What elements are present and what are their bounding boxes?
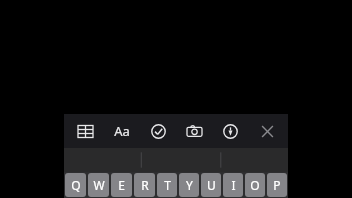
staticText: I	[231, 177, 236, 193]
button[interactable]: Checklist	[143, 114, 173, 148]
button[interactable]: I	[223, 173, 243, 197]
button[interactable]: W	[88, 173, 109, 197]
button[interactable]: Close	[252, 114, 282, 148]
button[interactable]: Q	[65, 173, 86, 197]
staticText: Aa	[114, 122, 130, 140]
button[interactable]: Camera	[179, 114, 209, 148]
button[interactable]: R	[134, 173, 155, 197]
staticText: Q	[71, 177, 81, 193]
staticText: R	[141, 177, 149, 193]
button[interactable]: Y	[179, 173, 199, 197]
staticText: W	[93, 177, 105, 193]
staticText: Y	[186, 177, 193, 193]
staticText: T	[164, 177, 171, 193]
button[interactable]: E	[111, 173, 132, 197]
button[interactable]: P	[267, 173, 287, 197]
staticText: U	[207, 177, 216, 193]
staticText: E	[118, 177, 125, 193]
button[interactable]: Table	[70, 114, 100, 148]
button[interactable]: U	[201, 173, 221, 197]
button[interactable]: Markup	[215, 114, 245, 148]
button[interactable]: Text format	[107, 114, 137, 148]
staticText: O	[250, 177, 260, 193]
staticText: P	[273, 177, 281, 193]
button[interactable]: T	[157, 173, 177, 197]
button[interactable]: O	[245, 173, 265, 197]
